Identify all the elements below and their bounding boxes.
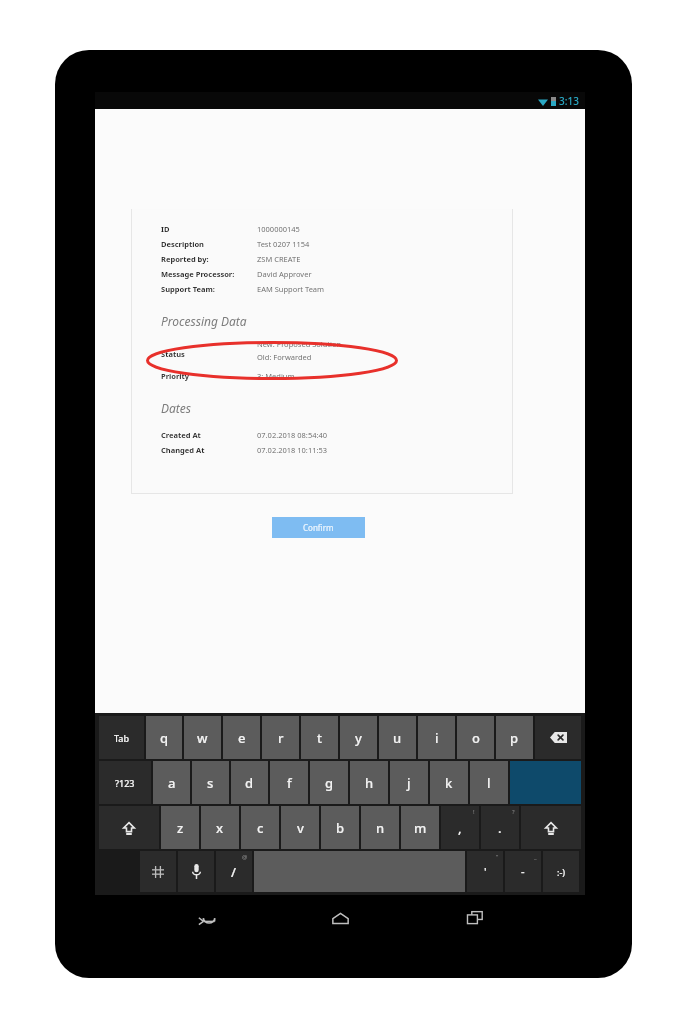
staticText: Changed At: [161, 445, 205, 455]
staticText: .: [498, 819, 502, 837]
button[interactable]: b: [321, 806, 359, 849]
staticText: 3:13: [559, 94, 579, 108]
button[interactable]: e: [223, 716, 260, 759]
staticText: p: [510, 729, 519, 747]
staticText: l: [487, 774, 491, 792]
button[interactable]: h: [350, 761, 388, 804]
staticText: a: [168, 774, 176, 792]
staticText: !: [473, 808, 475, 816]
staticText: /: [231, 863, 237, 881]
staticText: New: Proposed Solution: [257, 339, 342, 349]
staticText: _: [534, 853, 537, 861]
staticText: Confirm: [303, 522, 334, 533]
staticText: :-): [557, 866, 566, 878]
button[interactable]: v: [281, 806, 319, 849]
button[interactable]: c: [241, 806, 279, 849]
staticText: Status: [161, 349, 185, 359]
staticText: u: [393, 729, 402, 747]
staticText: c: [257, 819, 264, 837]
staticText: i: [435, 729, 439, 747]
staticText: @: [242, 853, 248, 861]
button[interactable]: ,: [441, 806, 479, 849]
button[interactable]: Back: [182, 895, 230, 940]
staticText: t: [317, 729, 322, 747]
staticText: ID: [161, 224, 170, 234]
staticText: m: [414, 819, 427, 837]
staticText: j: [407, 774, 411, 792]
staticText: 1000000145: [257, 224, 300, 234]
staticText: d: [245, 774, 254, 792]
staticText: Test 0207 1154: [257, 239, 310, 249]
button[interactable]: ?123: [99, 761, 151, 804]
button[interactable]: w: [184, 716, 221, 759]
button[interactable]: Keyboard settings: [140, 851, 176, 892]
staticText: f: [287, 774, 292, 792]
button[interactable]: o: [457, 716, 494, 759]
button[interactable]: l: [470, 761, 508, 804]
staticText: ': [484, 864, 487, 879]
button[interactable]: -: [505, 851, 541, 892]
staticText: r: [278, 729, 284, 747]
button[interactable]: :-): [543, 851, 579, 892]
staticText: o: [472, 729, 480, 747]
staticText: 07.02.2018 08:54:40: [257, 430, 328, 440]
button[interactable]: Home: [316, 895, 364, 940]
button[interactable]: q: [146, 716, 182, 759]
button[interactable]: Confirm: [272, 517, 365, 538]
button[interactable]: z: [161, 806, 199, 849]
button[interactable]: Backspace: [535, 716, 581, 759]
button[interactable]: t: [301, 716, 338, 759]
button[interactable]: ': [467, 851, 503, 892]
staticText: x: [216, 819, 224, 837]
staticText: h: [365, 774, 374, 792]
staticText: Created At: [161, 430, 201, 440]
button[interactable]: Recents: [451, 895, 499, 940]
button[interactable]: x: [201, 806, 239, 849]
button[interactable]: Shift: [99, 806, 159, 849]
staticText: Tab: [114, 732, 130, 744]
button[interactable]: r: [262, 716, 299, 759]
button[interactable]: Tab: [99, 716, 144, 759]
button[interactable]: i: [418, 716, 455, 759]
staticText: n: [376, 819, 385, 837]
button[interactable]: Voice input: [178, 851, 214, 892]
staticText: Priority: [161, 371, 190, 381]
button[interactable]: k: [430, 761, 468, 804]
button[interactable]: a: [153, 761, 190, 804]
button[interactable]: u: [379, 716, 416, 759]
staticText: David Approver: [257, 269, 312, 279]
staticText: q: [160, 729, 169, 747]
button[interactable]: y: [340, 716, 377, 759]
staticText: Description: [161, 239, 204, 249]
staticText: Support Team:: [161, 284, 215, 294]
button[interactable]: g: [310, 761, 348, 804]
staticText: Processing Data: [161, 313, 247, 329]
button[interactable]: d: [231, 761, 268, 804]
staticText: z: [177, 819, 184, 837]
staticText: ?123: [115, 777, 135, 789]
button[interactable]: s: [192, 761, 229, 804]
button[interactable]: f: [270, 761, 308, 804]
staticText: ,: [458, 819, 462, 837]
staticText: e: [238, 729, 246, 747]
button[interactable]: /: [216, 851, 252, 892]
staticText: 3: Medium: [257, 371, 295, 381]
staticText: 07.02.2018 10:11:53: [257, 445, 328, 455]
button[interactable]: .: [481, 806, 519, 849]
button[interactable]: j: [390, 761, 428, 804]
staticText: s: [207, 774, 214, 792]
staticText: k: [445, 774, 453, 792]
staticText: Message Processor:: [161, 269, 235, 279]
staticText: -: [521, 864, 525, 879]
button[interactable]: p: [496, 716, 533, 759]
staticText: ": [496, 853, 499, 861]
staticText: Reported by:: [161, 254, 209, 264]
button[interactable]: n: [361, 806, 399, 849]
button[interactable]: Shift: [521, 806, 581, 849]
staticText: y: [355, 729, 362, 747]
button[interactable]: m: [401, 806, 439, 849]
staticText: ZSM CREATE: [257, 254, 301, 264]
